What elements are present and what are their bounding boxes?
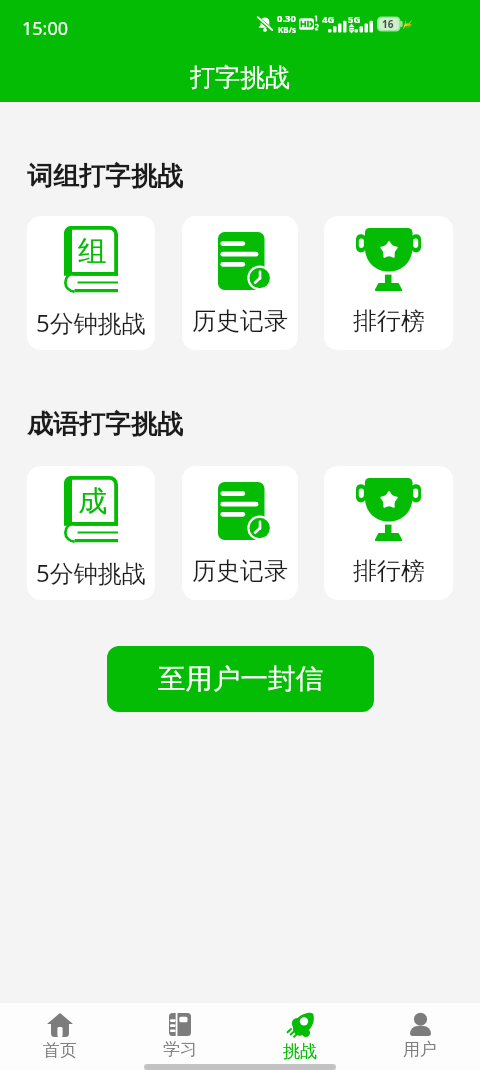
- button[interactable]: 排行榜: [324, 466, 453, 600]
- button[interactable]: 挑战: [240, 1003, 360, 1070]
- staticText: 4G: [322, 13, 335, 26]
- staticText: 历史记录: [192, 306, 288, 336]
- staticText: 挑战: [283, 1041, 317, 1062]
- staticText: 成语打字挑战: [27, 408, 183, 441]
- button[interactable]: 用户: [360, 1003, 480, 1070]
- staticText: 首页: [43, 1040, 77, 1061]
- staticText: KB/s: [278, 24, 296, 35]
- staticText: 16: [382, 17, 394, 31]
- button[interactable]: 成: [27, 466, 155, 600]
- staticText: 5G: [348, 13, 361, 26]
- staticText: 打字挑战: [190, 62, 290, 93]
- staticText: 词组打字挑战: [27, 160, 183, 193]
- button[interactable]: 至用户一封信: [107, 646, 374, 712]
- staticText: 排行榜: [353, 556, 425, 586]
- button[interactable]: 学习: [120, 1003, 240, 1070]
- staticText: 5分钟挑战: [36, 306, 146, 339]
- staticText: 学习: [163, 1039, 197, 1060]
- staticText: 组: [78, 233, 107, 270]
- staticText: 至用户一封信: [158, 662, 323, 697]
- staticText: 5分钟挑战: [36, 556, 146, 589]
- button[interactable]: 排行榜: [324, 216, 453, 350]
- button[interactable]: 历史记录: [182, 466, 298, 600]
- staticText: 用户: [403, 1039, 437, 1060]
- staticText: 历史记录: [192, 556, 288, 586]
- staticText: 0.30: [277, 12, 296, 25]
- button[interactable]: 组: [27, 216, 155, 350]
- staticText: 15:00: [22, 16, 69, 41]
- staticText: 成: [78, 483, 107, 520]
- staticText: 排行榜: [353, 306, 425, 336]
- button[interactable]: 首页: [0, 1003, 120, 1070]
- button[interactable]: 历史记录: [182, 216, 298, 350]
